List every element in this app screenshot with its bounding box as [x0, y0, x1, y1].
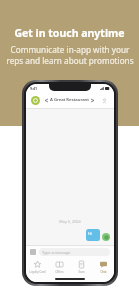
- staticText: Hi: [88, 231, 92, 236]
- staticText: 9:41: [30, 86, 38, 91]
- staticText: Communicate in-app with your reps and le…: [6, 44, 134, 66]
- button[interactable]: Loyalty Card: [26, 258, 48, 276]
- staticText: Type a message: [42, 250, 71, 255]
- button[interactable]: Type a message: [39, 248, 110, 256]
- staticText: A Great Restaurant: [50, 97, 89, 103]
- staticText: Scan: [78, 270, 85, 274]
- button[interactable]: Hi: [86, 229, 100, 241]
- button[interactable]: Offers: [48, 258, 70, 276]
- button[interactable]: Chat: [92, 258, 114, 276]
- button[interactable]: Profile: [31, 96, 40, 105]
- button[interactable]: Scan: [70, 258, 92, 276]
- button[interactable]: Attach photo: [30, 249, 36, 255]
- staticText: Loyalty Card: [29, 270, 46, 274]
- staticText: May 6, 2024: [26, 219, 114, 224]
- staticText: Chat: [100, 270, 107, 274]
- staticText: Get in touch anytime: [14, 26, 125, 40]
- staticText: Offers: [55, 270, 64, 274]
- button[interactable]: Contacts: [100, 96, 109, 105]
